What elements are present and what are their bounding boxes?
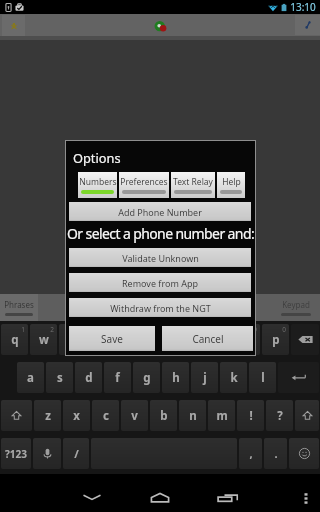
button[interactable]: Help [217, 172, 245, 198]
staticText: g [143, 370, 151, 386]
staticText: Or select a phone number and: [67, 224, 255, 243]
staticText: f [115, 370, 120, 386]
button[interactable]: Validate Unknown [69, 248, 251, 267]
button[interactable]: ? [266, 400, 293, 431]
button[interactable]: y [146, 324, 173, 355]
button[interactable]: Enter [278, 362, 319, 393]
button[interactable]: Remove from App [69, 273, 251, 292]
staticText: 6 [166, 325, 170, 334]
button[interactable]: g [133, 362, 160, 393]
staticText: k [230, 370, 238, 386]
button[interactable]: a [17, 362, 44, 393]
button[interactable]: Add Phone Number [69, 202, 251, 221]
staticText: ! [249, 408, 253, 424]
button[interactable]: Text Relay [171, 172, 215, 198]
button[interactable]: f [104, 362, 131, 393]
staticText: . [274, 446, 278, 461]
staticText: u [185, 332, 193, 348]
button[interactable]: t [117, 324, 144, 355]
button[interactable]: More options [296, 479, 316, 512]
button[interactable]: ?123 [1, 438, 31, 469]
staticText: z [45, 408, 51, 424]
button[interactable]: Recent apps [208, 477, 248, 512]
button[interactable]: Emoji [289, 438, 319, 469]
staticText: 7 [195, 325, 199, 334]
staticText: h [172, 370, 180, 386]
staticText: v [131, 408, 138, 424]
staticText: Preferences [120, 176, 168, 188]
button[interactable]: Delete [291, 324, 319, 355]
button[interactable]: Voice input [33, 438, 61, 469]
staticText: l [261, 370, 265, 386]
button[interactable]: Phrases [0, 294, 38, 321]
button[interactable]: Withdraw from the NGT [69, 298, 251, 317]
staticText: 5 [137, 325, 141, 334]
staticText: / [74, 446, 79, 461]
button[interactable]: k [220, 362, 247, 393]
button[interactable]: w [30, 324, 57, 355]
button[interactable]: x [63, 400, 90, 431]
button[interactable]: / [63, 438, 89, 469]
staticText: o [243, 332, 251, 348]
staticText: Remove from App [122, 277, 198, 289]
button[interactable]: Shift [295, 400, 319, 431]
button[interactable]: j [191, 362, 218, 393]
staticText: w [39, 332, 49, 348]
staticText: q [11, 332, 19, 348]
button[interactable]: . [264, 438, 287, 469]
button[interactable]: h [162, 362, 189, 393]
button[interactable]: Keypad [272, 294, 320, 321]
staticText: 3 [79, 325, 83, 334]
button[interactable]: o [233, 324, 260, 355]
button[interactable]: Back [72, 478, 112, 512]
staticText: p [272, 332, 280, 348]
button[interactable]: Call [295, 15, 320, 35]
staticText: 2 [50, 325, 54, 334]
button[interactable]: Cancel [162, 326, 253, 351]
button[interactable]: l [249, 362, 276, 393]
staticText: t [128, 332, 133, 348]
staticText: d [85, 370, 93, 386]
button[interactable]: , [239, 438, 262, 469]
staticText: Save [101, 332, 123, 346]
button[interactable]: Accessibility [2, 15, 25, 36]
staticText: x [73, 408, 80, 424]
staticText: Phrases [4, 299, 34, 310]
button[interactable]: d [75, 362, 102, 393]
button[interactable]: q [1, 324, 28, 355]
button[interactable]: r [88, 324, 115, 355]
button[interactable]: ! [237, 400, 264, 431]
button[interactable]: i [204, 324, 231, 355]
staticText: Cancel [192, 332, 224, 346]
staticText: n [189, 408, 197, 424]
staticText: r [99, 332, 105, 348]
button[interactable]: n [179, 400, 206, 431]
button[interactable]: Home [140, 479, 180, 512]
staticText: i [216, 332, 220, 348]
button[interactable]: Numbers [78, 172, 117, 198]
staticText: Keypad [282, 299, 310, 310]
button[interactable]: v [121, 400, 148, 431]
button[interactable]: e [59, 324, 86, 355]
staticText: 0 [282, 325, 286, 334]
button[interactable]: b [150, 400, 177, 431]
button[interactable]: m [208, 400, 235, 431]
button[interactable]: Shift [1, 400, 32, 431]
staticText: j [203, 370, 207, 386]
staticText: m [216, 408, 228, 424]
button[interactable]: c [92, 400, 119, 431]
button[interactable]: z [34, 400, 61, 431]
button[interactable]: Preferences [119, 172, 169, 198]
staticText: Add Phone Number [118, 206, 202, 218]
button[interactable]: u [175, 324, 202, 355]
staticText: c [103, 408, 109, 424]
button[interactable]: p [262, 324, 289, 355]
button[interactable]: Save [69, 326, 155, 351]
staticText: Numbers [79, 176, 117, 188]
staticText: , [249, 446, 253, 461]
staticText: 9 [253, 325, 257, 334]
button[interactable]: s [46, 362, 73, 393]
staticText: s [57, 370, 63, 386]
staticText: 8 [224, 325, 228, 334]
